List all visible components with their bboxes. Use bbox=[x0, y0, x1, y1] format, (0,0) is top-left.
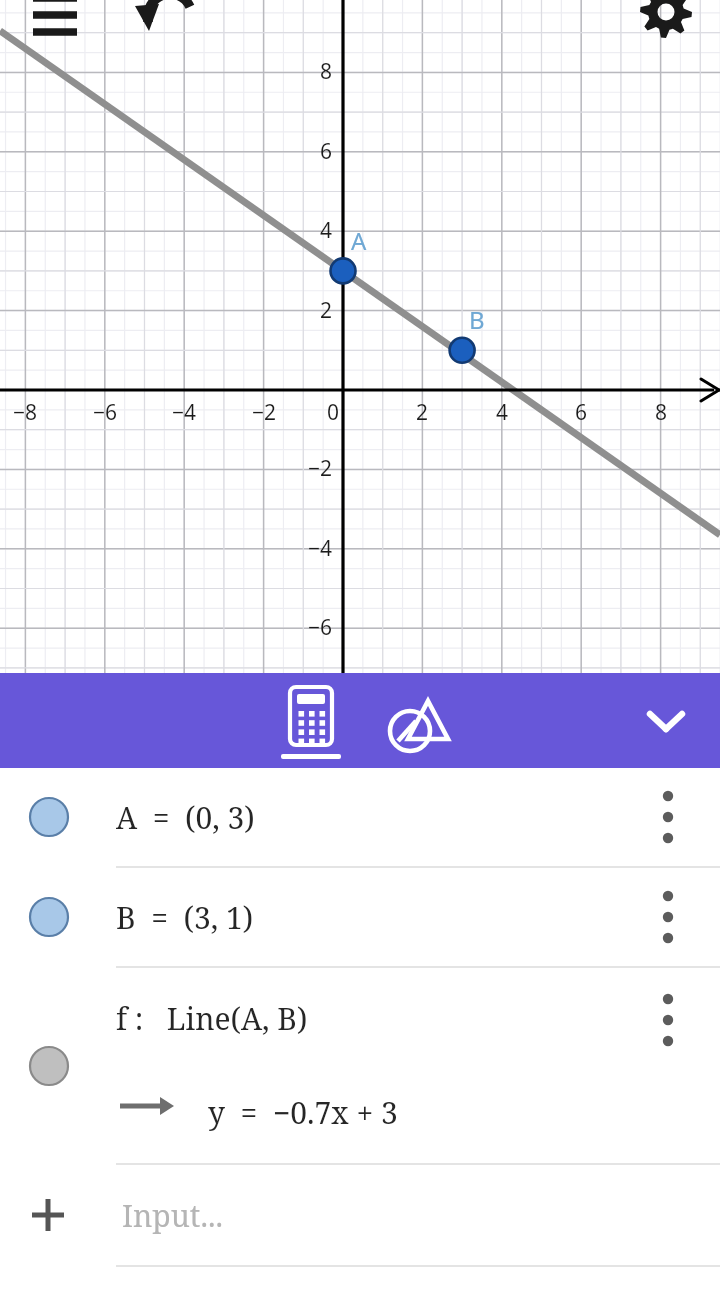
staticText: −2 bbox=[252, 398, 277, 427]
staticText: 10 bbox=[308, 0, 333, 7]
button[interactable]: More options bbox=[644, 996, 692, 1044]
button[interactable]: Settings bbox=[630, 0, 702, 48]
staticText: 6 bbox=[320, 137, 333, 166]
other: Toggle visibility bbox=[28, 1045, 70, 1087]
staticText: B = (3, 1) bbox=[116, 897, 254, 938]
button[interactable]: Undo bbox=[130, 0, 210, 56]
staticText: −8 bbox=[13, 398, 38, 427]
staticText: −2 bbox=[308, 454, 333, 483]
staticText: 0 bbox=[327, 398, 340, 427]
staticText: 8 bbox=[655, 398, 668, 427]
staticText: −4 bbox=[308, 534, 333, 563]
button[interactable]: Calculator bbox=[277, 681, 345, 761]
staticText: 8 bbox=[320, 57, 333, 86]
staticText: 2 bbox=[320, 296, 333, 325]
staticText: A bbox=[351, 224, 367, 257]
other: Toggle visibility bbox=[28, 796, 70, 838]
button[interactable]: Collapse bbox=[634, 689, 698, 753]
staticText: −6 bbox=[308, 613, 333, 642]
staticText: −6 bbox=[93, 398, 118, 427]
button[interactable]: More options bbox=[644, 793, 692, 841]
staticText: 4 bbox=[496, 398, 509, 427]
button[interactable]: Toggle visibility bbox=[0, 868, 720, 966]
button[interactable]: More options bbox=[644, 893, 692, 941]
button[interactable]: Add input bbox=[0, 1165, 720, 1265]
other: Toggle visibility bbox=[28, 896, 70, 938]
staticText: f : Line(A, B) bbox=[116, 998, 308, 1039]
button[interactable]: Toggle visibility bbox=[0, 968, 720, 1163]
button[interactable]: Toggle visibility bbox=[0, 768, 720, 866]
button[interactable]: Tools bbox=[372, 685, 442, 755]
staticText: A = (0, 3) bbox=[116, 797, 255, 838]
other: Add input bbox=[26, 1193, 70, 1237]
button[interactable]: Menu bbox=[18, 0, 92, 52]
staticText: y = −0.7x + 3 bbox=[208, 1092, 398, 1133]
staticText: 6 bbox=[575, 398, 588, 427]
staticText: Input... bbox=[122, 1195, 223, 1236]
staticText: 4 bbox=[320, 216, 333, 245]
staticText: 2 bbox=[416, 398, 429, 427]
staticText: −4 bbox=[172, 398, 197, 427]
staticText: B bbox=[469, 303, 485, 336]
